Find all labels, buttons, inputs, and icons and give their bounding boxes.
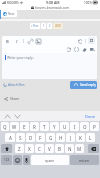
button[interactable]: U bbox=[60, 122, 69, 131]
staticText: space bbox=[45, 158, 55, 163]
staticText: W bbox=[12, 124, 17, 130]
staticText: Z bbox=[18, 146, 21, 152]
staticText: K bbox=[79, 135, 82, 141]
button[interactable]: I bbox=[70, 122, 79, 131]
button[interactable]: Attach files bbox=[3, 83, 25, 87]
staticText: G bbox=[49, 135, 53, 141]
button[interactable]: Share bbox=[4, 96, 20, 101]
button[interactable]: 2 bbox=[47, 23, 52, 29]
button[interactable]: space bbox=[31, 155, 69, 165]
staticText: J bbox=[70, 135, 72, 141]
staticText: S bbox=[19, 135, 22, 141]
button[interactable]: Quote bbox=[88, 37, 95, 44]
button[interactable]: Insert link bbox=[27, 38, 33, 44]
button[interactable]: G bbox=[46, 133, 55, 142]
staticText: Share bbox=[10, 96, 20, 101]
button[interactable]: O bbox=[80, 122, 89, 131]
button[interactable]: D bbox=[26, 133, 35, 142]
staticText: T bbox=[43, 124, 46, 130]
staticText: 9:08 AM bbox=[46, 0, 60, 5]
button[interactable]: Next field bbox=[14, 113, 21, 120]
staticText: P bbox=[93, 124, 96, 130]
staticText: « Prev bbox=[31, 24, 39, 28]
staticText: E bbox=[23, 124, 26, 130]
button[interactable]: Shift bbox=[1, 144, 12, 153]
button[interactable]: 1 bbox=[41, 23, 46, 29]
staticText: 100% bbox=[84, 1, 92, 5]
staticText: Done bbox=[85, 114, 96, 119]
staticText: 123 bbox=[4, 158, 10, 162]
button[interactable]: R bbox=[30, 122, 39, 131]
button[interactable]: 2025 bbox=[53, 23, 63, 29]
button[interactable]: J bbox=[66, 133, 75, 142]
button[interactable]: T bbox=[40, 122, 49, 131]
button[interactable]: X bbox=[25, 144, 34, 153]
staticText: L bbox=[89, 135, 92, 141]
staticText: F bbox=[39, 135, 42, 141]
staticText: B bbox=[6, 39, 9, 44]
button[interactable]: L bbox=[86, 133, 95, 142]
staticText: forums.brunswick.com bbox=[35, 6, 70, 10]
staticText: New bbox=[8, 12, 15, 16]
button[interactable]: K bbox=[76, 133, 85, 142]
button[interactable]: Previous field bbox=[4, 113, 11, 120]
button[interactable]: Send reply bbox=[70, 81, 97, 89]
button[interactable]: Q bbox=[1, 122, 9, 131]
button[interactable]: S bbox=[16, 133, 25, 142]
button[interactable]: More bbox=[89, 46, 95, 52]
staticText: H bbox=[59, 135, 63, 141]
staticText: X bbox=[28, 146, 31, 152]
button[interactable]: C bbox=[35, 144, 44, 153]
button[interactable]: Done bbox=[83, 114, 98, 119]
button[interactable]: Backspace bbox=[88, 144, 99, 153]
staticText: C bbox=[38, 146, 41, 152]
button[interactable]: P bbox=[90, 122, 99, 131]
button[interactable]: B bbox=[55, 144, 64, 153]
staticText: U bbox=[63, 124, 67, 130]
staticText: I bbox=[74, 124, 76, 130]
staticText: 1 bbox=[43, 24, 45, 28]
staticText: B bbox=[58, 146, 61, 152]
staticText: D bbox=[29, 135, 33, 141]
button[interactable]: « Prev bbox=[30, 23, 40, 29]
staticText: 2 bbox=[49, 24, 51, 28]
staticText: R bbox=[33, 124, 36, 130]
staticText: O bbox=[83, 124, 87, 130]
button[interactable]: F bbox=[36, 133, 45, 142]
button[interactable]: Emoji bbox=[13, 155, 22, 165]
button[interactable]: Code bbox=[73, 46, 79, 52]
staticText: A bbox=[9, 135, 12, 141]
button[interactable]: Clear formatting bbox=[81, 46, 87, 52]
button[interactable]: Redo bbox=[65, 46, 71, 52]
button[interactable]: A bbox=[5, 133, 15, 142]
staticText: N bbox=[68, 146, 72, 152]
staticText: Y bbox=[53, 124, 56, 130]
staticText: Q bbox=[3, 124, 7, 130]
button[interactable]: N bbox=[65, 144, 74, 153]
button[interactable]: Undo bbox=[77, 38, 83, 44]
staticText: Send reply bbox=[80, 83, 96, 87]
button[interactable]: H bbox=[56, 133, 65, 142]
staticText: I bbox=[16, 39, 18, 44]
staticText: M bbox=[77, 146, 82, 152]
button[interactable]: New bbox=[1, 10, 17, 17]
staticText: ROGERS bbox=[7, 1, 19, 5]
staticText: return bbox=[79, 158, 90, 163]
button[interactable]: Y bbox=[50, 122, 59, 131]
staticText: V bbox=[48, 146, 51, 152]
button[interactable]: M bbox=[75, 144, 84, 153]
button[interactable]: E bbox=[20, 122, 29, 131]
button[interactable]: V bbox=[45, 144, 54, 153]
button[interactable]: B bbox=[4, 38, 10, 44]
staticText: Attach files bbox=[8, 83, 25, 87]
staticText: 2025 bbox=[55, 24, 61, 28]
button[interactable]: Insert image bbox=[35, 38, 41, 44]
button[interactable]: Z bbox=[15, 144, 24, 153]
button[interactable]: I bbox=[14, 38, 20, 44]
staticText: Write your reply... bbox=[7, 55, 36, 60]
button[interactable]: 123 bbox=[1, 155, 12, 165]
button[interactable]: Dictate bbox=[23, 155, 30, 165]
button[interactable]: return bbox=[70, 155, 99, 165]
button[interactable]: W bbox=[10, 122, 19, 131]
